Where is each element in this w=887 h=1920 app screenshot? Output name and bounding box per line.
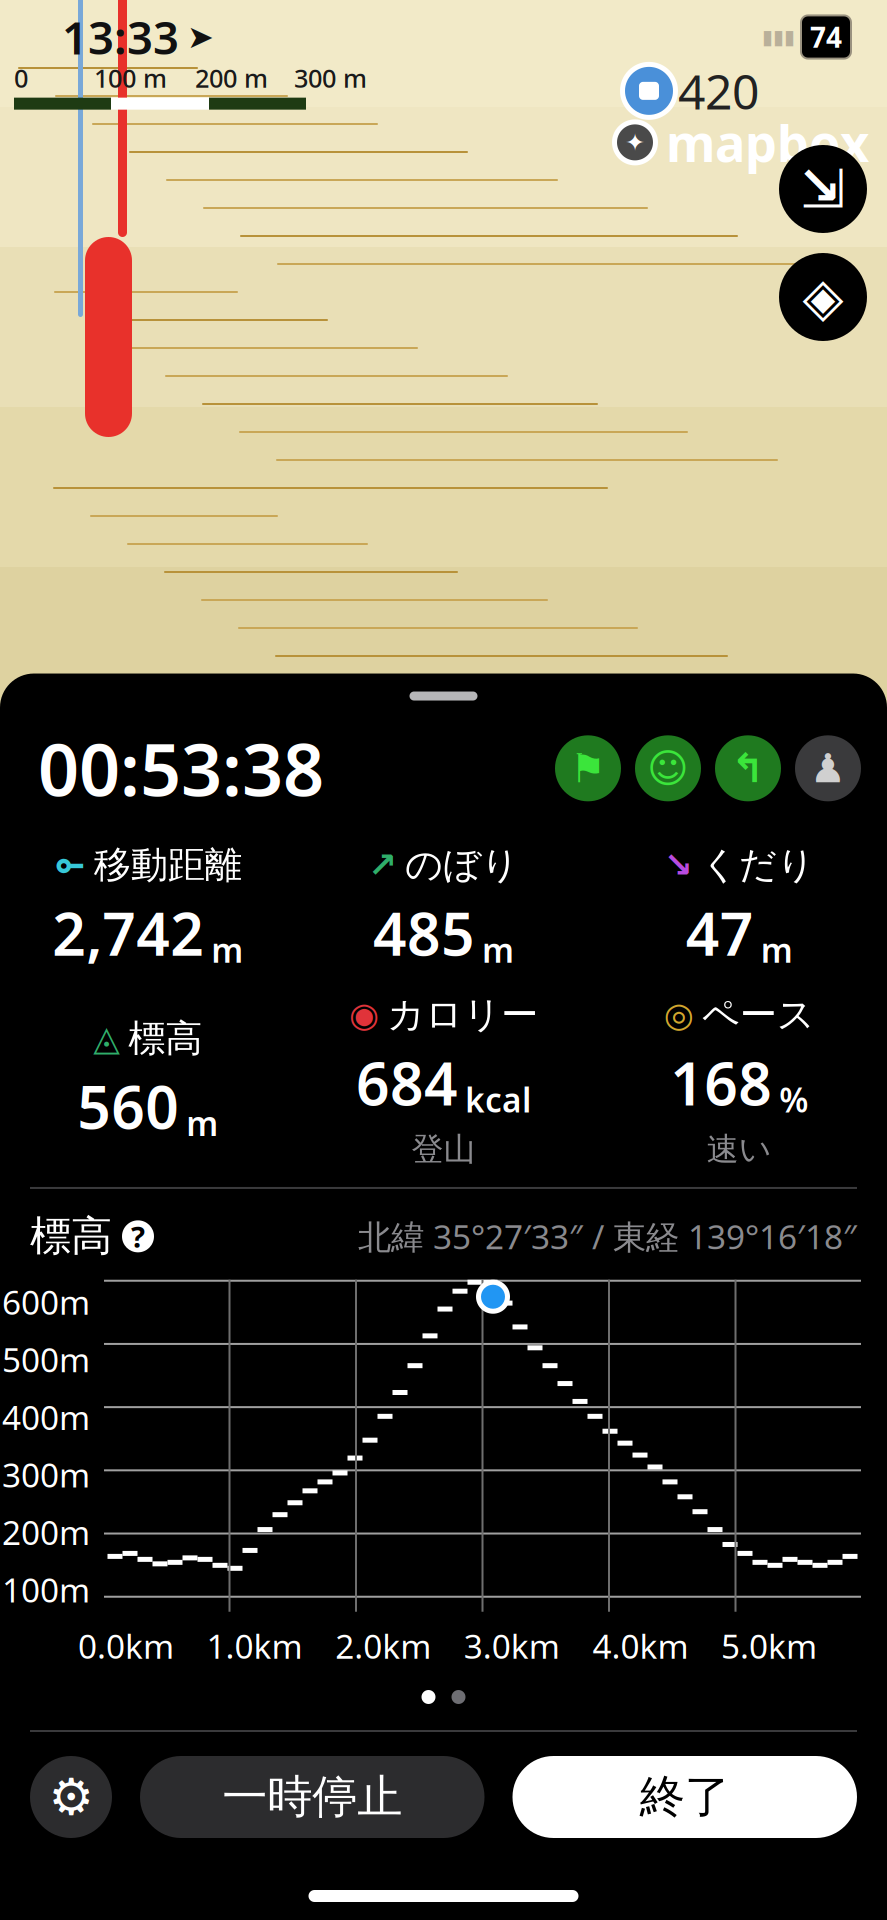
staticText: カロリー — [387, 992, 538, 1038]
staticText: 420 — [678, 59, 759, 123]
staticText: ◎ — [664, 995, 694, 1034]
staticText: 485 — [373, 894, 475, 972]
staticText: ➤ — [187, 19, 214, 55]
staticText: 200 m — [195, 61, 268, 95]
staticText: 500m — [2, 1337, 90, 1382]
button[interactable]: About elevation — [122, 1217, 154, 1256]
staticText: 1.0km — [207, 1624, 303, 1668]
button[interactable]: Resize map — [779, 145, 867, 233]
button[interactable]: Post a moment — [635, 735, 701, 801]
staticText: 100m — [2, 1567, 90, 1612]
button[interactable]: 終了 — [512, 1756, 857, 1838]
staticText: ペース — [702, 992, 815, 1038]
staticText: m — [761, 928, 793, 972]
staticText: 560 — [77, 1067, 179, 1145]
staticText: 2.0km — [335, 1624, 431, 1668]
staticText: 00:53:38 — [38, 720, 324, 816]
staticText: ⚙ — [48, 1768, 93, 1826]
button[interactable]: 一時停止 — [140, 1756, 484, 1838]
staticText: % — [779, 1077, 808, 1122]
staticText: 移動距離 — [94, 842, 242, 888]
staticText: 登山 — [411, 1130, 475, 1169]
staticText: ↰ — [731, 746, 765, 791]
staticText: ▮▮▮ — [762, 26, 795, 48]
staticText: m — [482, 928, 514, 972]
staticText: 3.0km — [464, 1624, 560, 1668]
staticText: ◬ — [93, 1019, 120, 1058]
staticText: のぼり — [405, 842, 519, 888]
staticText: 4.0km — [592, 1624, 688, 1668]
staticText: ↘ — [664, 845, 693, 885]
staticText: 5.0km — [721, 1624, 817, 1668]
staticText: 168 — [670, 1044, 772, 1122]
staticText: ☺ — [647, 746, 689, 791]
staticText: ◉ — [349, 995, 379, 1034]
staticText: 一時停止 — [222, 1769, 402, 1825]
staticText: 終了 — [640, 1769, 730, 1825]
button[interactable]: Group members — [795, 735, 861, 801]
staticText: 標高 — [128, 1016, 202, 1061]
staticText: 0 — [14, 61, 28, 95]
staticText: ♟ — [810, 746, 846, 791]
staticText: 300 m — [294, 61, 367, 95]
staticText: kcal — [465, 1077, 531, 1122]
staticText: ? — [131, 1217, 145, 1256]
staticText: 300m — [2, 1452, 90, 1497]
staticText: 13:33 — [62, 7, 179, 67]
button[interactable]: Map layers — [779, 253, 867, 341]
staticText: 標高 — [30, 1211, 112, 1262]
staticText: 200m — [2, 1510, 90, 1554]
staticText: 684 — [356, 1044, 458, 1122]
button[interactable]: Route guidance — [715, 735, 781, 801]
staticText: ⚑ — [570, 746, 606, 791]
staticText: ↗ — [368, 845, 397, 885]
staticText: mapbox — [666, 109, 869, 176]
staticText: 100 m — [94, 61, 167, 95]
staticText: ✦ — [625, 129, 645, 156]
staticText: m — [186, 1101, 218, 1145]
staticText: 400m — [2, 1395, 90, 1439]
staticText: 速い — [707, 1130, 772, 1169]
staticText: m — [211, 928, 243, 972]
staticText: ⟜ — [54, 849, 86, 881]
staticText: 2,742 — [52, 894, 204, 972]
staticText: 47 — [686, 894, 754, 972]
staticText: ⇲ — [800, 159, 845, 219]
staticText: ◈ — [802, 267, 843, 327]
staticText: 0.0km — [78, 1624, 174, 1668]
staticText: 600m — [2, 1280, 90, 1324]
staticText: 74 — [810, 18, 842, 56]
staticText: 北緯 35°27′33″ / 東経 139°16′18″ — [358, 1214, 857, 1258]
button[interactable]: Checkpoints — [555, 735, 621, 801]
button[interactable]: 設定 — [30, 1756, 112, 1838]
staticText: くだり — [701, 842, 815, 888]
